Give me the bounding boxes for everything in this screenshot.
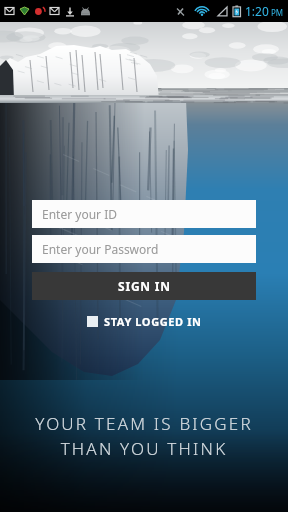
staticText: 1:20 <box>245 3 269 19</box>
staticText: Enter your ID <box>42 206 117 222</box>
staticText: THAN YOU THINK <box>0 437 288 460</box>
button[interactable]: SIGN IN <box>32 272 256 300</box>
button[interactable]: Stay logged in checkbox <box>83 312 206 331</box>
button[interactable]: Enter your ID <box>32 200 256 228</box>
staticText: STAY LOGGED IN <box>104 314 202 329</box>
staticText: PM <box>271 7 284 18</box>
staticText: YOUR TEAM IS BIGGER <box>0 412 288 435</box>
button[interactable]: Enter your Password <box>32 235 256 263</box>
staticText: SIGN IN <box>118 278 171 294</box>
staticText: Enter your Password <box>42 241 159 257</box>
